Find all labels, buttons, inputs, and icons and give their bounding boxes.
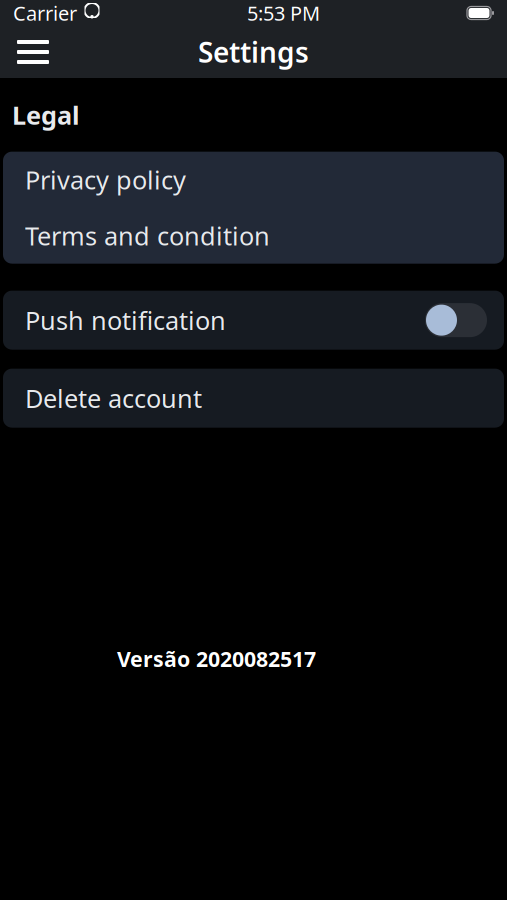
staticText: Push notification [25, 303, 226, 337]
staticText: Carrier [13, 0, 77, 26]
button[interactable]: Push notification [3, 291, 504, 350]
staticText: Legal [12, 98, 80, 132]
button[interactable]: Terms and condition [3, 208, 504, 264]
staticText: Privacy policy [25, 163, 186, 196]
staticText: Delete account [25, 381, 202, 415]
button[interactable]: Privacy policy [3, 152, 504, 208]
button[interactable]: Delete account [3, 369, 504, 428]
button[interactable]: Menu [8, 30, 58, 74]
staticText: 5:53 PM [247, 0, 320, 26]
staticText: Versão 2020082517 [117, 645, 316, 673]
staticText: Settings [198, 33, 309, 71]
staticText: Terms and condition [25, 219, 270, 252]
